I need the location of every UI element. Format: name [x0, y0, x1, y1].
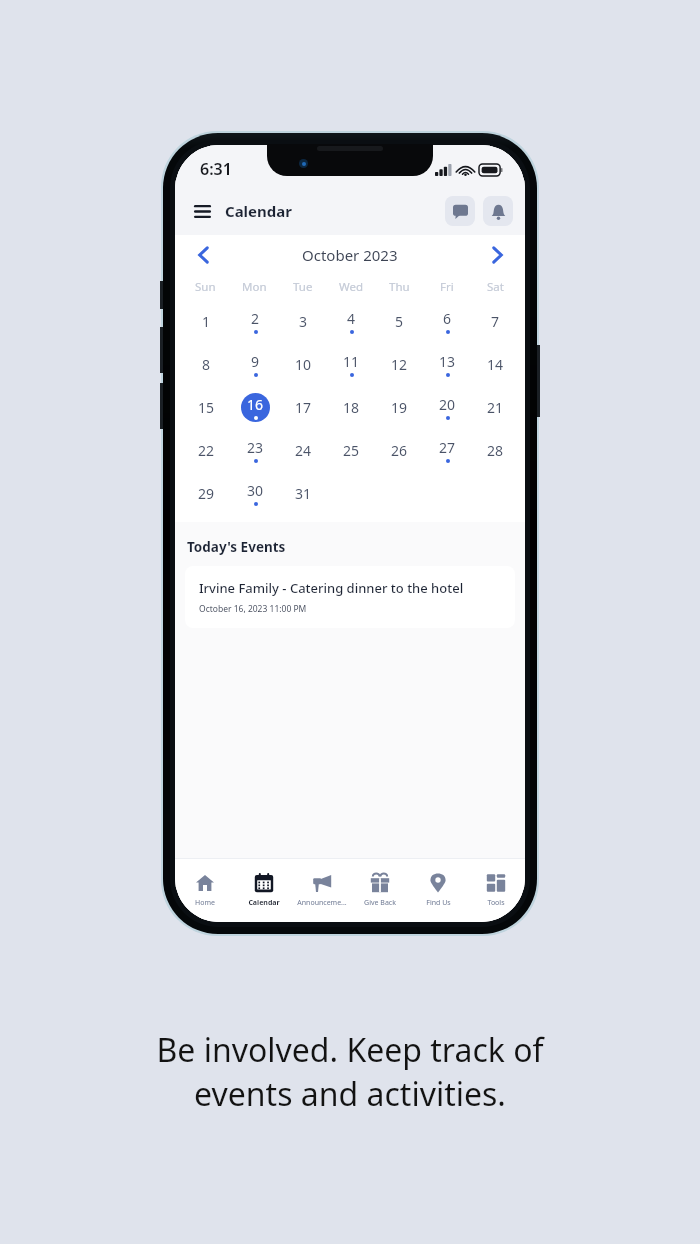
button[interactable]: Next month [483, 241, 511, 269]
staticText: Today's Events [187, 538, 286, 556]
staticText: events and activities. [194, 1072, 506, 1116]
button[interactable]: 24 [286, 433, 320, 467]
button[interactable]: Announceme... [293, 859, 351, 922]
staticText: 11 [343, 352, 360, 371]
button[interactable]: 1 [189, 304, 223, 338]
staticText: 15 [198, 398, 215, 417]
staticText: 18 [343, 398, 360, 417]
button[interactable]: 9 [238, 347, 272, 381]
staticText: 24 [295, 441, 312, 460]
button[interactable]: 21 [478, 390, 512, 424]
staticText: 13 [439, 352, 456, 371]
staticText: Mon [242, 279, 267, 295]
staticText: 21 [487, 398, 504, 417]
staticText: Sat [487, 279, 504, 295]
staticText: 14 [487, 355, 504, 374]
button[interactable]: 25 [334, 433, 368, 467]
staticText: 6:31 [200, 158, 232, 180]
button[interactable]: 5 [382, 304, 416, 338]
staticText: Tue [293, 279, 313, 295]
staticText: 16 [247, 395, 264, 414]
staticText: 20 [439, 395, 456, 414]
button[interactable]: 31 [286, 476, 320, 510]
staticText: 31 [295, 484, 312, 503]
button[interactable]: Find Us [409, 859, 467, 922]
button[interactable]: 23 [238, 433, 272, 467]
staticText: Irvine Family - Catering dinner to the h… [199, 579, 464, 597]
staticText: October 16, 2023 11:00 PM [199, 603, 307, 615]
button[interactable]: Notifications [483, 196, 513, 226]
staticText: Wed [339, 279, 364, 295]
staticText: 2 [251, 309, 260, 328]
button[interactable]: Tools [467, 859, 525, 922]
button[interactable]: 22 [189, 433, 223, 467]
staticText: Find Us [426, 898, 451, 908]
button[interactable]: 12 [382, 347, 416, 381]
button[interactable]: 28 [478, 433, 512, 467]
staticText: Announceme... [297, 898, 347, 908]
button[interactable]: 18 [334, 390, 368, 424]
staticText: 4 [347, 309, 356, 328]
button[interactable]: 4 [334, 304, 368, 338]
staticText: 29 [198, 484, 215, 503]
button[interactable]: Previous month [189, 241, 217, 269]
staticText: 17 [295, 398, 312, 417]
button[interactable]: 20 [430, 390, 464, 424]
button[interactable]: 10 [286, 347, 320, 381]
button[interactable]: Menu [187, 196, 217, 226]
button[interactable]: Calendar [234, 859, 293, 922]
button[interactable]: 8 [189, 347, 223, 381]
button[interactable]: Home [175, 859, 234, 922]
staticText: 1 [202, 312, 211, 331]
staticText: 8 [202, 355, 211, 374]
staticText: October 2023 [302, 245, 398, 265]
button[interactable]: 26 [382, 433, 416, 467]
button[interactable]: 13 [430, 347, 464, 381]
button[interactable]: 17 [286, 390, 320, 424]
button[interactable]: 11 [334, 347, 368, 381]
staticText: 27 [439, 438, 456, 457]
staticText: Be involved. Keep track of [156, 1028, 544, 1072]
staticText: Home [195, 898, 215, 908]
staticText: Calendar [248, 898, 280, 908]
button[interactable]: 29 [189, 476, 223, 510]
staticText: 6 [443, 309, 452, 328]
staticText: 19 [391, 398, 408, 417]
button[interactable]: Irvine Family - Catering dinner to the h… [185, 566, 515, 628]
staticText: 7 [491, 312, 500, 331]
button[interactable]: Messages [445, 196, 475, 226]
staticText: 12 [391, 355, 408, 374]
staticText: Tools [487, 898, 505, 908]
staticText: Calendar [225, 201, 292, 221]
staticText: Give Back [364, 898, 396, 908]
button[interactable]: 2 [238, 304, 272, 338]
staticText: 10 [295, 355, 312, 374]
staticText: 23 [247, 438, 264, 457]
button[interactable]: 7 [478, 304, 512, 338]
button[interactable]: 6 [430, 304, 464, 338]
staticText: Fri [440, 279, 454, 295]
staticText: 5 [395, 312, 404, 331]
button[interactable]: 15 [189, 390, 223, 424]
staticText: 22 [198, 441, 215, 460]
button[interactable]: 30 [238, 476, 272, 510]
staticText: Sun [195, 279, 216, 295]
staticText: 25 [343, 441, 360, 460]
button[interactable]: Give Back [351, 859, 409, 922]
button[interactable]: 16 [238, 390, 272, 424]
staticText: 30 [247, 481, 264, 500]
button[interactable]: 27 [430, 433, 464, 467]
staticText: Thu [389, 279, 410, 295]
staticText: 9 [251, 352, 260, 371]
button[interactable]: 3 [286, 304, 320, 338]
button[interactable]: 19 [382, 390, 416, 424]
staticText: 28 [487, 441, 504, 460]
staticText: 26 [391, 441, 408, 460]
button[interactable]: 14 [478, 347, 512, 381]
staticText: 3 [299, 312, 308, 331]
